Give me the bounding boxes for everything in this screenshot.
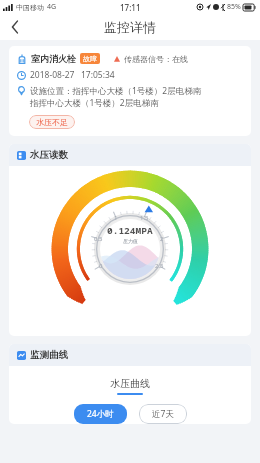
staticText: 2.5: [155, 262, 164, 270]
staticText: 0: [99, 262, 103, 270]
button[interactable]: Back: [0, 14, 30, 40]
button[interactable]: 24小时: [74, 404, 127, 424]
staticText: 设施位置：指挥中心大楼（1号楼）2层电梯南 指挥中心大楼（1号楼）2层电梯南: [30, 85, 202, 109]
staticText: 0.124MPA: [107, 224, 153, 237]
staticText: 压力值: [123, 238, 138, 244]
staticText: 2: [160, 235, 164, 243]
staticText: 水压不足: [36, 117, 68, 127]
staticText: 监控详情: [104, 19, 156, 35]
staticText: 近7天: [152, 408, 174, 420]
staticText: 17:11: [120, 2, 141, 13]
button[interactable]: 水压不足: [29, 115, 75, 129]
staticText: 1: [114, 214, 118, 222]
button[interactable]: 室内消火栓: [9, 46, 251, 136]
staticText: 4G: [47, 2, 57, 12]
staticText: 24小时: [87, 408, 114, 420]
staticText: 水压读数: [30, 149, 68, 161]
staticText: 故障: [83, 54, 97, 63]
staticText: 1.5: [140, 214, 149, 222]
button[interactable]: 水压曲线: [110, 377, 150, 395]
staticText: 2018-08-27 17:05:34: [30, 69, 115, 81]
staticText: 传感器信号：在线: [124, 54, 188, 64]
staticText: 0.5: [94, 235, 103, 243]
staticText: 中国移动: [16, 3, 44, 12]
staticText: 监测曲线: [30, 349, 68, 361]
staticText: 85%: [227, 2, 241, 12]
staticText: 室内消火栓: [31, 53, 76, 64]
button[interactable]: 近7天: [139, 404, 187, 424]
staticText: 水压曲线: [110, 377, 150, 390]
